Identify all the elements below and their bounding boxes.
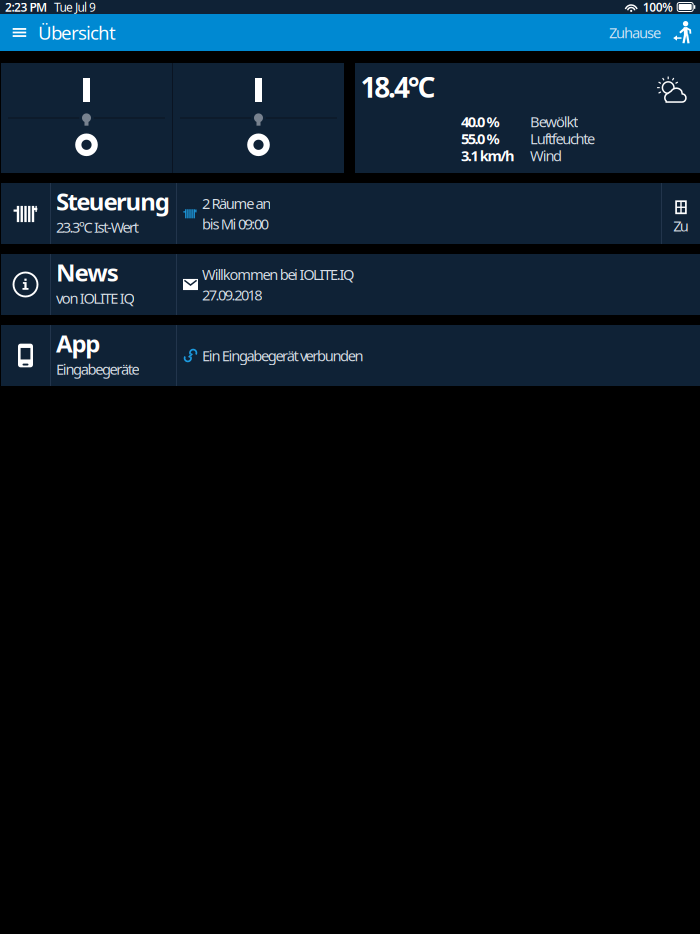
staticText: News xyxy=(56,256,119,288)
staticText: Steuerung xyxy=(56,185,170,217)
staticText: 100% xyxy=(643,0,673,15)
button[interactable]: News xyxy=(0,254,700,315)
staticText: 2 Räume an xyxy=(202,193,271,213)
button[interactable]: Lichtschalter 2 xyxy=(173,63,344,173)
staticText: 27.09.2018 xyxy=(202,285,262,304)
button[interactable]: Wetter xyxy=(355,63,700,173)
staticText: Übersicht xyxy=(38,20,116,45)
button[interactable]: Licht an xyxy=(223,72,294,108)
staticText: Ein Eingabegerät verbunden xyxy=(202,346,363,365)
staticText: von IOLITE IQ xyxy=(56,288,134,308)
button[interactable]: App xyxy=(0,325,700,386)
staticText: Willkommen bei IOLITE.IQ xyxy=(202,264,354,284)
button[interactable]: Menü xyxy=(0,15,38,50)
staticText: Zuhause xyxy=(609,23,661,42)
button[interactable]: Steuerung xyxy=(0,183,700,244)
staticText: 18.4°C xyxy=(360,68,435,106)
staticText: App xyxy=(56,327,100,359)
button[interactable]: Licht an xyxy=(51,72,122,108)
button[interactable]: Licht aus xyxy=(218,130,299,160)
staticText: Bewölkt xyxy=(530,112,578,131)
staticText: Eingabegeräte xyxy=(56,359,139,379)
staticText: bis Mi 09:00 xyxy=(202,214,269,233)
button[interactable]: Zuhause xyxy=(609,17,700,47)
staticText: 3.1 km/h xyxy=(461,146,515,165)
button[interactable]: Lichtschalter 1 xyxy=(1,63,172,173)
staticText: 40.0 % xyxy=(461,112,499,131)
staticText: Wind xyxy=(530,146,562,165)
staticText: Luftfeuchte xyxy=(530,129,595,148)
staticText: Zu xyxy=(673,216,689,236)
staticText: 2:23 PM xyxy=(5,0,47,15)
button[interactable]: Licht aus xyxy=(46,130,127,160)
staticText: Tue Jul 9 xyxy=(54,0,96,15)
staticText: 23.3°C Ist-Wert xyxy=(56,217,139,237)
staticText: 55.0 % xyxy=(461,129,499,148)
